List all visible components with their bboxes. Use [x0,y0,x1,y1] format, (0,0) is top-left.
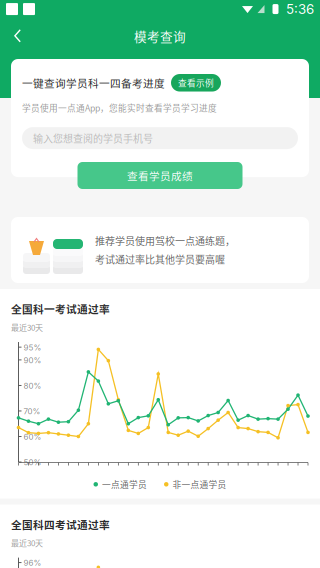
staticText: 80% [23,381,41,391]
staticText: 推荐学员使用驾校一点通练题， [95,233,235,248]
staticText: 一点通学员 [102,478,147,490]
staticText: 全国科四考试通过率 [11,517,110,532]
button[interactable]: 查看示例 [171,74,221,91]
staticText: 90% [23,355,41,365]
button[interactable]: 查看学员成绩 [77,162,242,189]
staticText: 60% [23,432,41,442]
staticText: 95% [23,343,41,352]
staticText: 学员使用一点通App，您能实时查看学员学习进度 [22,101,217,114]
staticText: 96% [23,558,41,568]
staticText: 最近30天 [11,321,43,333]
staticText: 考试通过率比其他学员要高喔 [95,252,225,266]
staticText: 最近30天 [11,537,43,549]
staticText: 50% [23,457,41,467]
button[interactable]: 返回 [0,21,33,51]
staticText: 输入您想查阅的学员手机号 [33,131,153,145]
staticText: 查看示例 [178,76,214,89]
staticText: 70% [23,406,40,416]
staticText: 全国科一考试通过率 [11,301,110,316]
staticText: 模考查询 [134,27,186,45]
staticText: 非一点通学员 [172,478,226,490]
staticText: 一键查询学员科一四备考进度 [22,75,165,90]
staticText: 5:36 [286,1,314,17]
staticText: 查看学员成绩 [127,168,193,183]
